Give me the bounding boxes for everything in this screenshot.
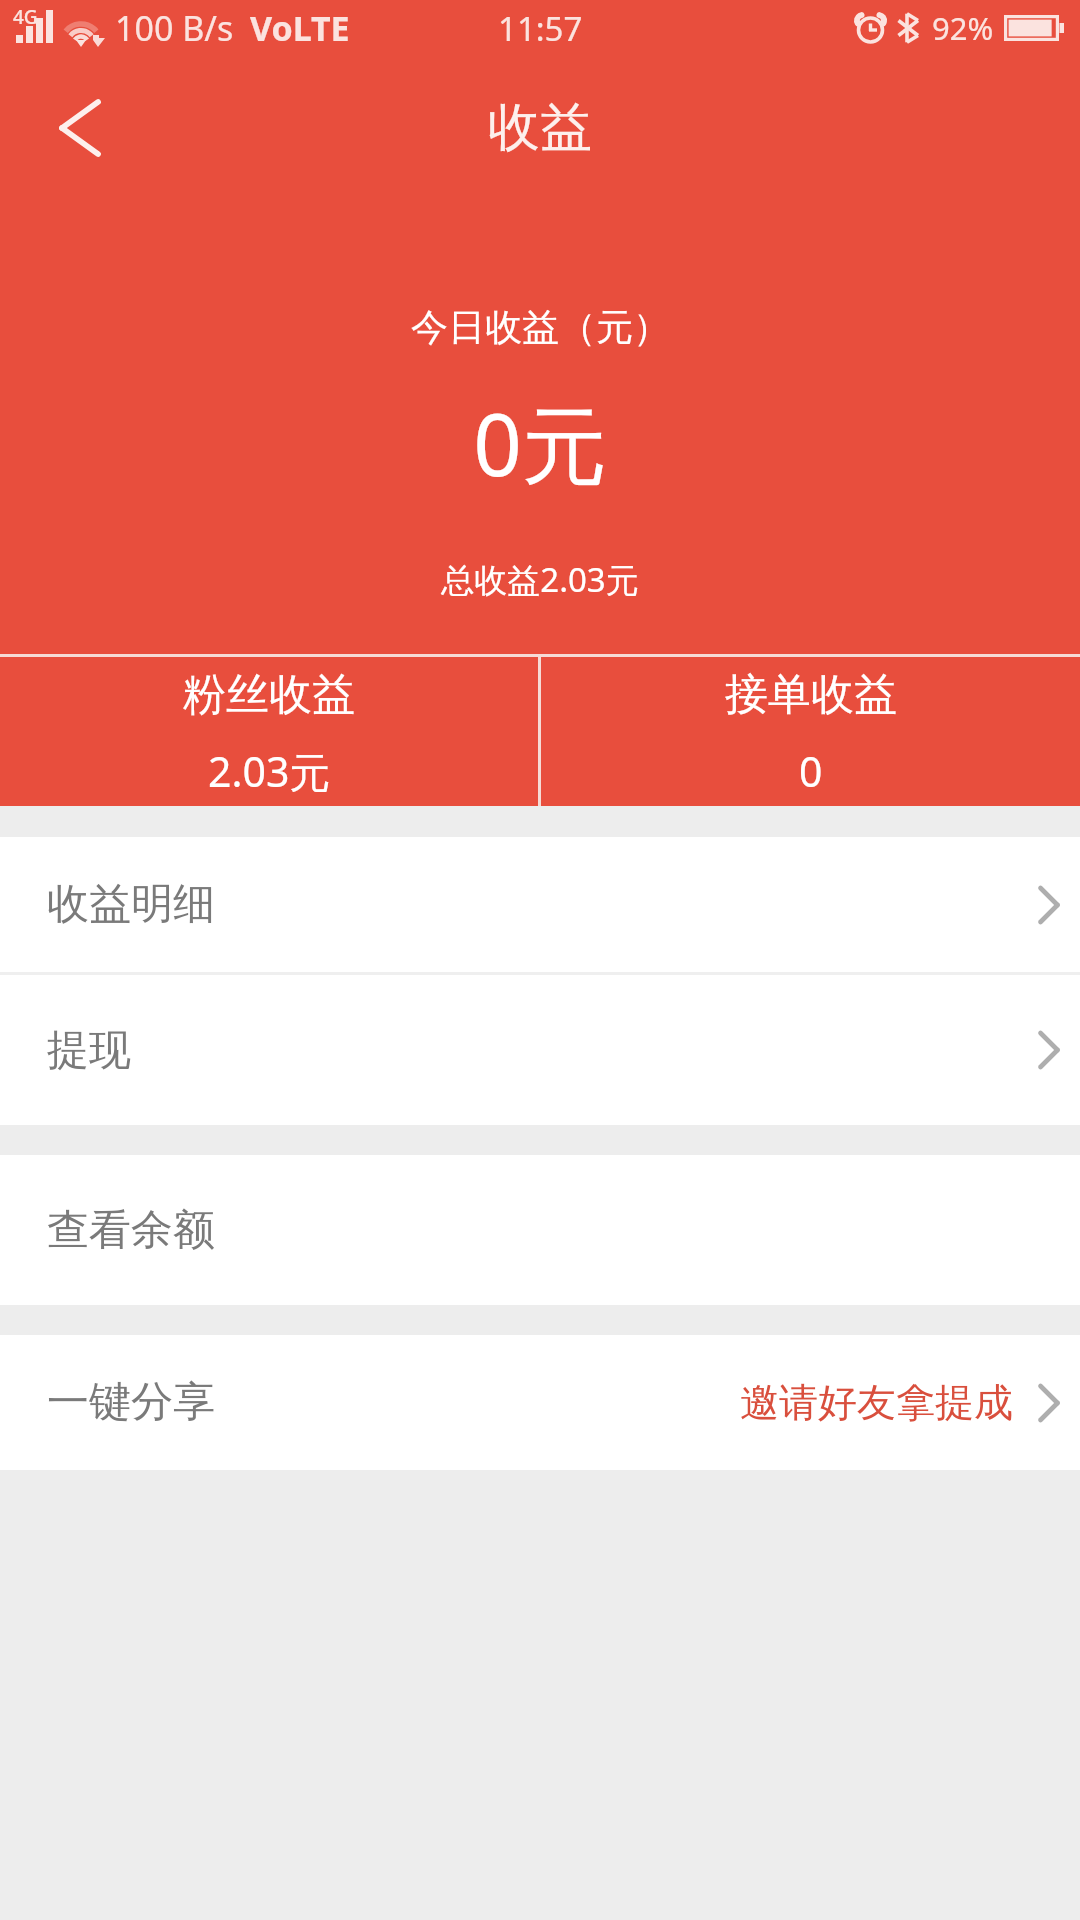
button[interactable]: 粉丝收益 [0,657,538,806]
staticText: 查看余额 [47,1204,215,1257]
staticText: 100 B/s [115,5,234,51]
button[interactable]: 收益明细 [0,837,1080,972]
staticText: 粉丝收益 [183,668,355,722]
staticText: 0 [799,743,823,799]
button[interactable]: 查看余额 [0,1155,1080,1305]
staticText: 接单收益 [725,668,897,722]
staticText: 0元 [473,385,607,495]
staticText: VoLTE [250,5,350,51]
button[interactable]: 接单收益 [541,657,1080,806]
staticText: 提现 [47,1024,131,1077]
staticText: 一键分享 [47,1376,215,1429]
staticText: 2.03元 [208,743,331,799]
staticText: 92% [932,7,994,49]
staticText: 今日收益（元） [411,304,670,351]
staticText: 4G [13,4,38,30]
staticText: 11:57 [498,6,583,51]
staticText: 收益 [488,95,592,161]
button[interactable]: Back [40,88,120,168]
staticText: 收益明细 [47,878,215,931]
staticText: 邀请好友拿提成 [740,1378,1013,1427]
staticText: 总收益2.03元 [441,557,639,602]
button[interactable]: 一键分享 [0,1335,1080,1470]
button[interactable]: 提现 [0,975,1080,1125]
